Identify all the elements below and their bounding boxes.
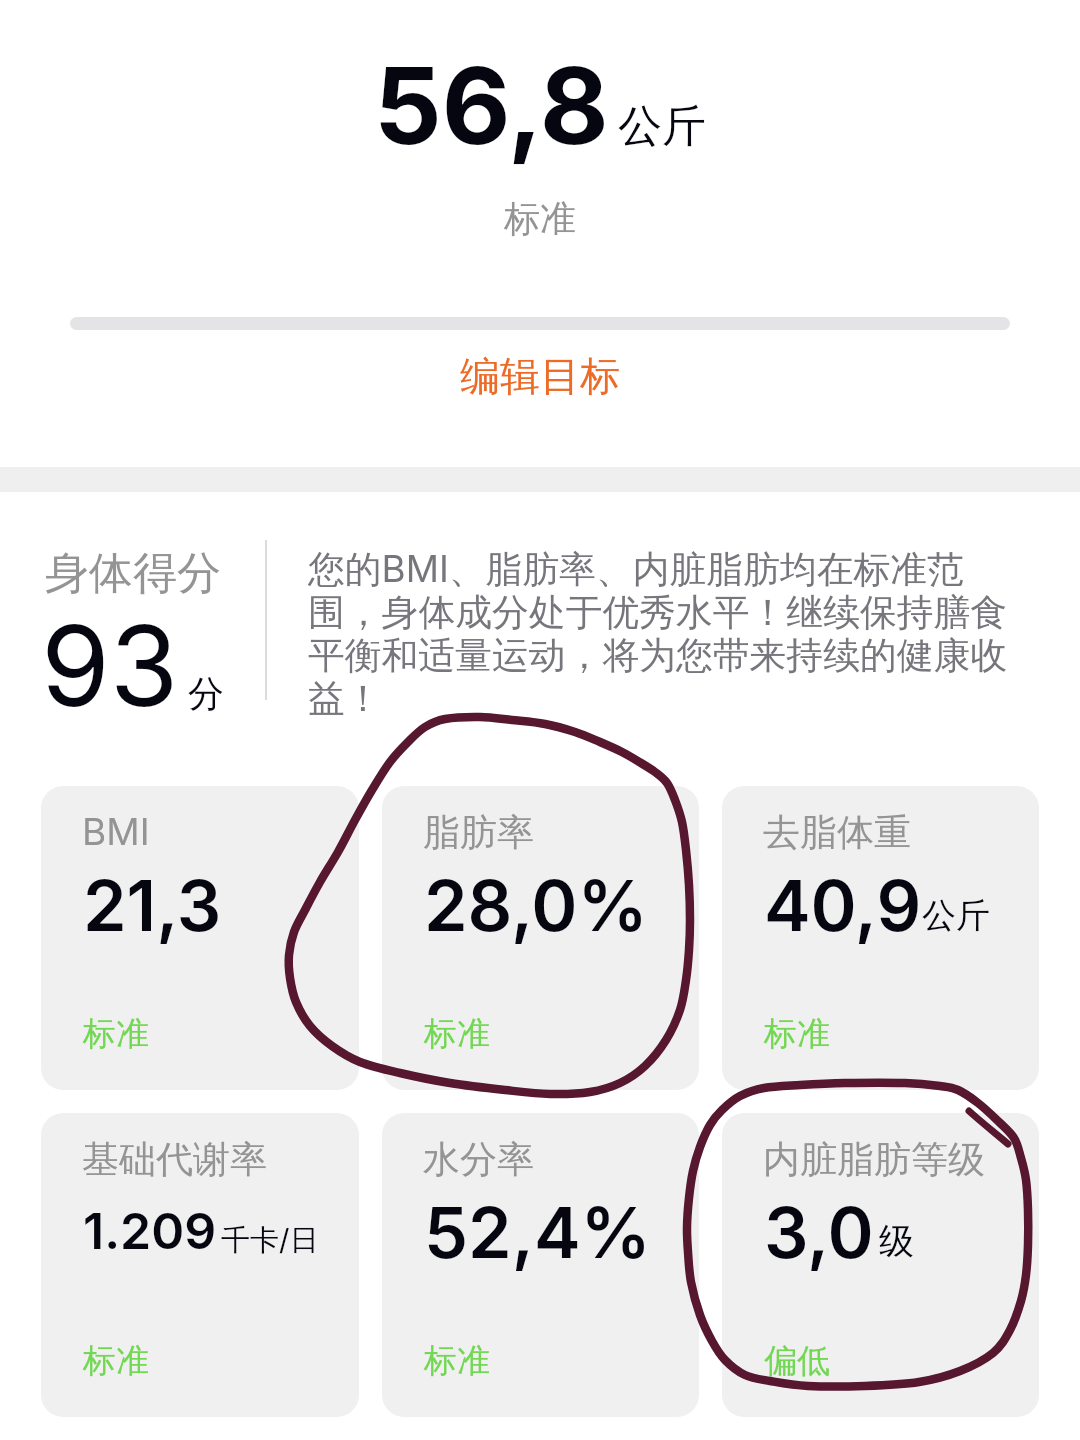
staticText: 分 bbox=[188, 671, 224, 716]
staticText: 3,0 bbox=[764, 1190, 874, 1275]
staticText: BMI bbox=[82, 809, 150, 854]
staticText: 偏低 bbox=[764, 1340, 830, 1382]
staticText: 脂肪率 bbox=[423, 809, 534, 856]
staticText: 93 bbox=[41, 598, 179, 732]
staticText: 身体得分 bbox=[45, 546, 221, 601]
staticText: 标准 bbox=[83, 1013, 149, 1055]
staticText: 56,8 bbox=[374, 41, 609, 169]
staticText: 标准 bbox=[424, 1340, 490, 1382]
button[interactable]: BMI bbox=[41, 786, 359, 1090]
staticText: 21,3 bbox=[83, 863, 222, 948]
staticText: 标准 bbox=[83, 1340, 149, 1382]
staticText: 1.209 bbox=[83, 1201, 217, 1261]
staticText: 标准 bbox=[764, 1013, 830, 1055]
button[interactable]: 基础代谢率 bbox=[41, 1113, 359, 1417]
staticText: 水分率 bbox=[423, 1136, 534, 1183]
button[interactable]: 脂肪率 bbox=[382, 786, 699, 1090]
staticText: 28,0% bbox=[424, 863, 648, 948]
staticText: 内脏脂肪等级 bbox=[763, 1136, 985, 1183]
button[interactable]: 去脂体重 bbox=[722, 786, 1039, 1090]
button[interactable]: 编辑目标 bbox=[0, 348, 1080, 404]
staticText: 52,4% bbox=[424, 1190, 651, 1275]
staticText: 编辑目标 bbox=[460, 351, 620, 401]
button[interactable]: 水分率 bbox=[382, 1113, 699, 1417]
staticText: 去脂体重 bbox=[763, 809, 911, 856]
staticText: 标准 bbox=[0, 196, 1080, 241]
button[interactable]: 内脏脂肪等级 bbox=[722, 1113, 1039, 1417]
staticText: 千卡/日 bbox=[221, 1222, 319, 1259]
staticText: 标准 bbox=[424, 1013, 490, 1055]
staticText: 公斤 bbox=[922, 894, 990, 937]
staticText: 您的BMI、脂肪率、内脏脂肪均在标准范 围，身体成分处于优秀水平！继续保持膳食 … bbox=[308, 546, 1078, 722]
staticText: 级 bbox=[879, 1219, 914, 1263]
staticText: 基础代谢率 bbox=[82, 1136, 267, 1183]
staticText: 40,9 bbox=[764, 863, 922, 948]
staticText: 公斤 bbox=[618, 99, 706, 154]
